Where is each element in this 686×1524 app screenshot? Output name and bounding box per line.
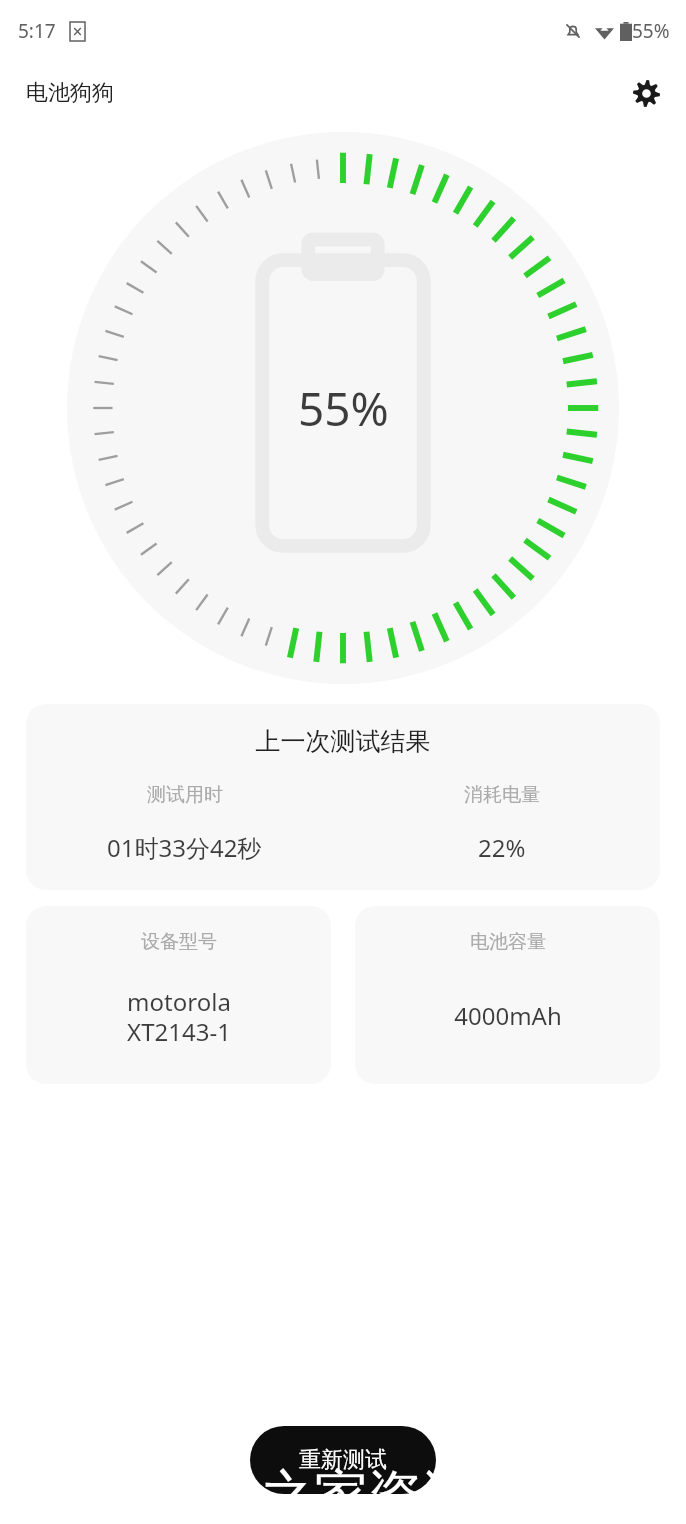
staticText: 头条号/驱动之家资讯 (0, 1456, 477, 1524)
staticText: 电池狗狗 (26, 79, 114, 107)
staticText: 上一次测试结果 (26, 726, 660, 757)
staticText: 22% (478, 831, 526, 864)
staticText: 设备型号 (141, 930, 217, 954)
button[interactable]: 设备型号 (26, 906, 331, 1084)
staticText: 5:17 (18, 18, 56, 44)
staticText: 01时33分42秒 (107, 831, 262, 864)
staticText: 测试用时 (147, 783, 223, 807)
button[interactable]: 电池容量 (355, 906, 660, 1084)
staticText: motorola XT2143-1 (127, 985, 231, 1048)
staticText: 4000mAh (454, 999, 562, 1032)
staticText: 消耗电量 (464, 783, 540, 807)
button[interactable]: 上一次测试结果 (26, 704, 660, 890)
staticText: 电池容量 (470, 930, 546, 954)
button[interactable]: Settings (622, 69, 670, 117)
staticText: 重新测试 (299, 1446, 387, 1474)
button[interactable]: 重新测试 (250, 1426, 436, 1494)
staticText: 55% (632, 18, 670, 44)
staticText: 55% (298, 377, 389, 440)
